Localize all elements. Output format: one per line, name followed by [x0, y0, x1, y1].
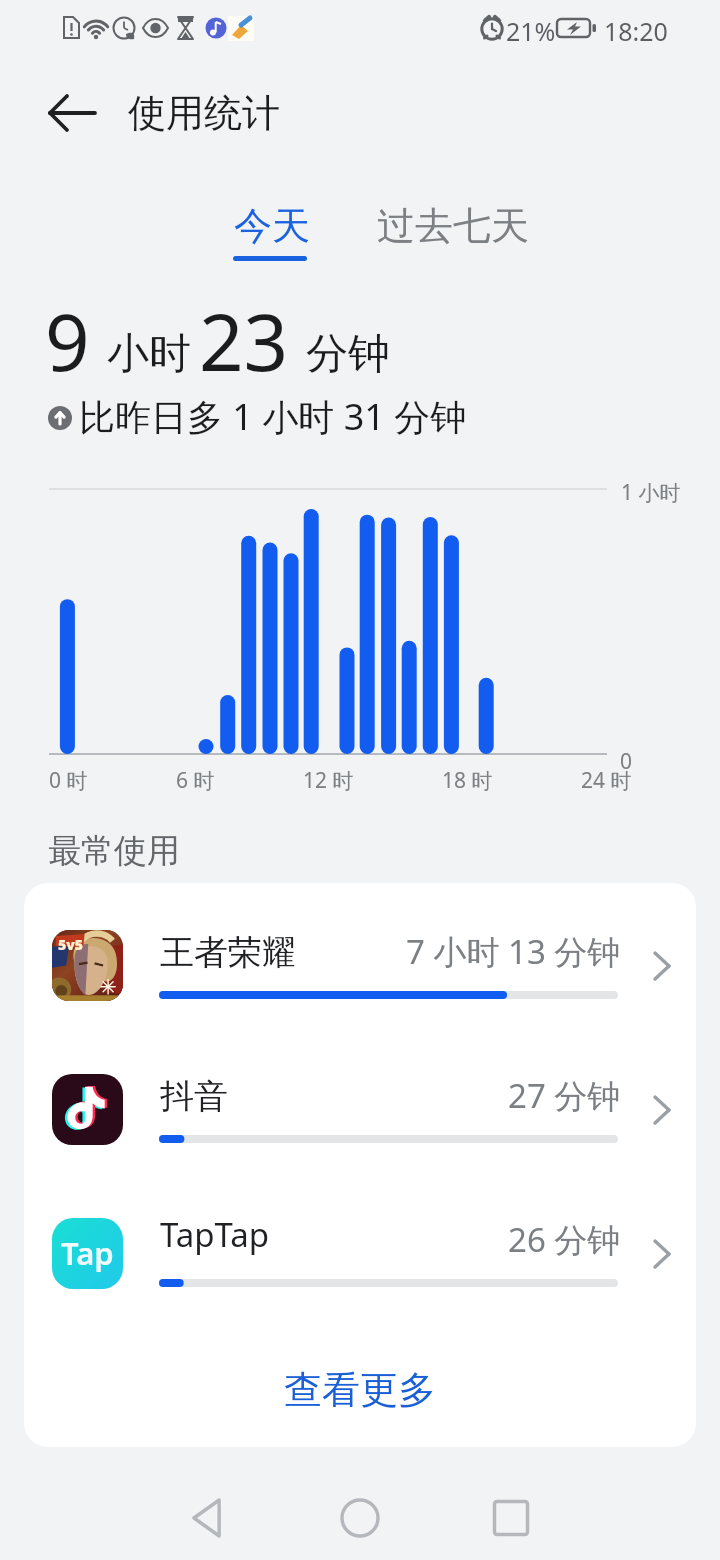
button[interactable]: Recents	[481, 1488, 541, 1548]
staticText: 24 时	[581, 766, 632, 795]
staticText: 过去七天	[377, 202, 529, 250]
staticText: 分钟	[306, 328, 390, 381]
staticText: 使用统计	[128, 89, 280, 137]
button[interactable]: 抖音	[24, 1027, 696, 1171]
staticText: 0 时	[49, 766, 88, 795]
staticText: 18:20	[604, 14, 668, 48]
button[interactable]: Tap	[24, 1171, 696, 1315]
staticText: 7 小时 13 分钟	[406, 929, 621, 974]
button[interactable]: 5v5	[24, 883, 696, 1027]
staticText: 9	[45, 288, 90, 394]
button[interactable]: Home	[330, 1488, 390, 1548]
staticText: 0	[620, 747, 633, 776]
button[interactable]: Navigate back	[178, 1488, 238, 1548]
staticText: 比昨日多 1 小时 31 分钟	[79, 392, 467, 441]
staticText: TapTap	[160, 1212, 270, 1257]
button[interactable]: Back	[42, 85, 98, 141]
staticText: 王者荣耀	[160, 931, 296, 974]
staticText: 今天	[234, 202, 310, 250]
staticText: 1 小时	[621, 478, 681, 507]
staticText: 查看更多	[284, 1366, 436, 1414]
staticText: 21%	[506, 14, 556, 48]
staticText: 小时	[107, 328, 191, 381]
staticText: 最常使用	[48, 830, 180, 872]
button[interactable]: 使用统计	[128, 89, 280, 137]
staticText: 27 分钟	[508, 1073, 621, 1118]
button[interactable]: 查看更多	[24, 1315, 696, 1447]
staticText: 抖音	[160, 1075, 228, 1118]
staticText: 23	[199, 288, 289, 394]
button[interactable]: 今天	[215, 192, 325, 272]
staticText: 12 时	[303, 766, 354, 795]
staticText: 6 时	[176, 766, 215, 795]
staticText: Tap	[61, 1232, 114, 1274]
button[interactable]: 过去七天	[360, 192, 540, 258]
staticText: 5v5	[58, 935, 83, 954]
staticText: 18 时	[442, 766, 493, 795]
staticText: 26 分钟	[508, 1217, 621, 1262]
